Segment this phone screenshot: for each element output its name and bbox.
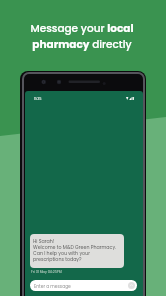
button[interactable]: Send message xyxy=(128,282,135,289)
staticText: Enter a message xyxy=(34,283,71,289)
button[interactable]: Hi Sarah! Welcome to M&D Green Pharmacy.… xyxy=(30,234,124,268)
staticText: Hi Sarah! Welcome to M&D Green Pharmacy.… xyxy=(33,238,117,263)
staticText: Fri 31 May 04:25PM xyxy=(31,269,62,274)
button[interactable]: Enter a message xyxy=(30,280,137,291)
staticText: Message your local pharmacy directly xyxy=(0,21,165,52)
staticText: 11:35 xyxy=(34,96,42,101)
